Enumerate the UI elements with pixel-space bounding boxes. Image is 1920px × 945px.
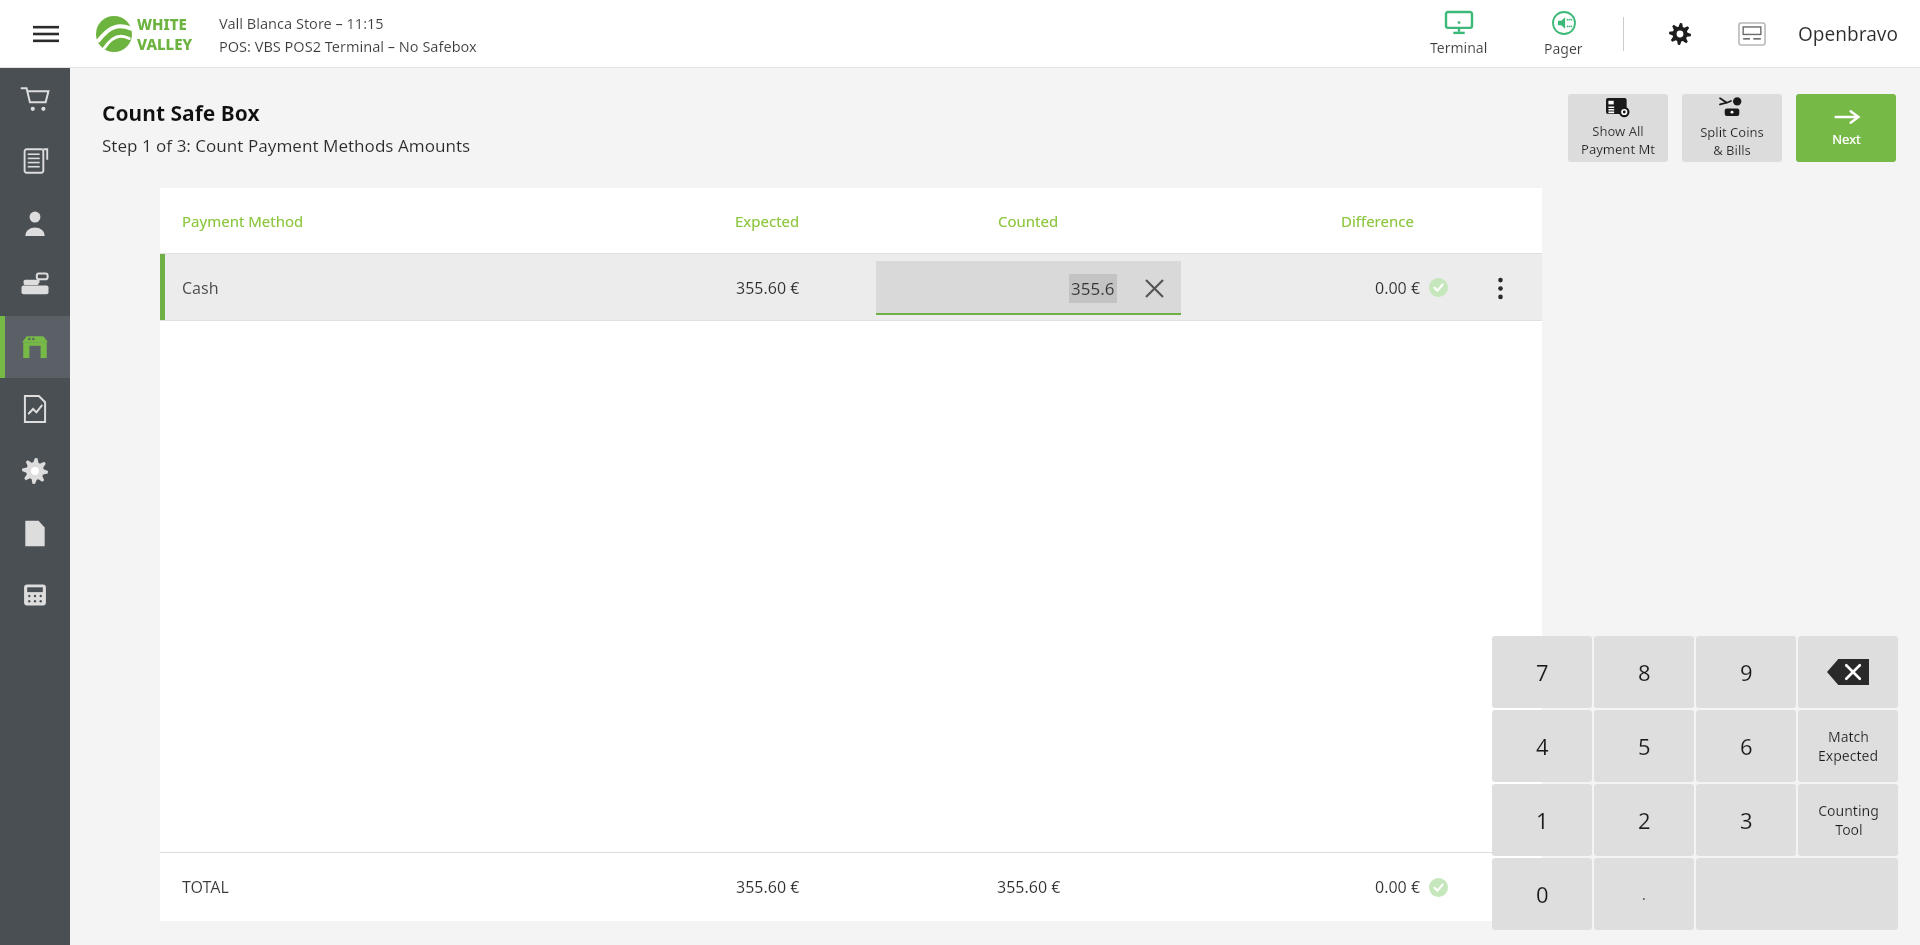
button[interactable]: 2 bbox=[1594, 784, 1694, 856]
button[interactable]: Register bbox=[0, 254, 70, 316]
staticText: Expected bbox=[735, 211, 800, 231]
staticText: Vall Blanca Store – 11:15 bbox=[219, 13, 384, 33]
button[interactable]: Pager bbox=[1538, 11, 1589, 58]
button[interactable]: 7 bbox=[1492, 636, 1592, 708]
button[interactable]: 9 bbox=[1696, 636, 1796, 708]
button[interactable]: 0 bbox=[1492, 858, 1592, 930]
button[interactable]: Split Coins bbox=[1682, 94, 1782, 162]
button[interactable]: Store bbox=[0, 316, 70, 378]
button[interactable]: Cash bbox=[160, 254, 1542, 321]
staticText: Difference bbox=[1341, 211, 1414, 231]
button[interactable]: Receipts bbox=[0, 130, 70, 192]
staticText: 355.60 € bbox=[736, 876, 800, 898]
staticText: Step 1 of 3: Count Payment Methods Amoun… bbox=[102, 134, 471, 157]
staticText: 0 bbox=[1536, 879, 1549, 909]
button[interactable]: Settings bbox=[1658, 12, 1702, 56]
button[interactable]: 1 bbox=[1492, 784, 1592, 856]
button[interactable]: Calculator bbox=[0, 564, 70, 626]
staticText: 0.00 € bbox=[1375, 876, 1421, 898]
staticText: 3 bbox=[1740, 805, 1753, 835]
staticText: 355.6 bbox=[1071, 277, 1115, 300]
button[interactable]: 8 bbox=[1594, 636, 1694, 708]
button[interactable]: 3 bbox=[1696, 784, 1796, 856]
button[interactable]: Settings bbox=[0, 440, 70, 502]
button[interactable]: Terminal bbox=[1424, 12, 1494, 57]
button[interactable]: Counting bbox=[1798, 784, 1898, 856]
staticText: Next bbox=[1832, 130, 1861, 148]
staticText: & Bills bbox=[1713, 141, 1751, 159]
button[interactable]: Document bbox=[0, 502, 70, 564]
button[interactable]: Menu bbox=[18, 6, 74, 62]
staticText: Match bbox=[1828, 727, 1869, 746]
staticText: VALLEY bbox=[137, 34, 193, 54]
button[interactable]: Report bbox=[0, 378, 70, 440]
staticText: 5 bbox=[1638, 731, 1651, 761]
button[interactable]: Backspace bbox=[1798, 636, 1898, 708]
staticText: Counting bbox=[1818, 801, 1879, 820]
staticText: Counted bbox=[998, 211, 1059, 231]
staticText: 9 bbox=[1740, 657, 1753, 687]
staticText: 0.00 € bbox=[1375, 277, 1421, 299]
staticText: Show All bbox=[1592, 122, 1644, 140]
staticText: 7 bbox=[1536, 657, 1549, 687]
staticText: Openbravo bbox=[1798, 21, 1898, 47]
staticText: TOTAL bbox=[182, 876, 229, 898]
staticText: Payment Method bbox=[182, 211, 304, 231]
staticText: 1 bbox=[1536, 805, 1549, 835]
button[interactable]: Next bbox=[1796, 94, 1896, 162]
staticText: Payment Mt bbox=[1581, 140, 1655, 158]
staticText: Split Coins bbox=[1700, 123, 1764, 141]
button[interactable]: SCO bbox=[1730, 12, 1774, 56]
staticText: 355.60 € bbox=[997, 876, 1061, 898]
button[interactable]: Customer bbox=[0, 192, 70, 254]
button[interactable]: 6 bbox=[1696, 710, 1796, 782]
staticText: 2 bbox=[1638, 805, 1651, 835]
staticText: Pager bbox=[1544, 39, 1583, 58]
staticText: POS: VBS POS2 Terminal – No Safebox bbox=[219, 36, 477, 56]
button[interactable]: 5 bbox=[1594, 710, 1694, 782]
staticText: Terminal bbox=[1430, 38, 1488, 57]
staticText: 8 bbox=[1638, 657, 1651, 687]
button[interactable]: More options bbox=[1482, 270, 1518, 306]
staticText: Cash bbox=[182, 277, 219, 299]
staticText: 4 bbox=[1536, 731, 1549, 761]
button[interactable]: 355.6 bbox=[876, 261, 1181, 315]
staticText: . bbox=[1642, 885, 1646, 904]
staticText: Expected bbox=[1818, 746, 1878, 765]
staticText: 355.60 € bbox=[736, 277, 800, 299]
button[interactable]: Cart bbox=[0, 68, 70, 130]
button[interactable]: Clear bbox=[1141, 275, 1167, 301]
staticText: 6 bbox=[1740, 731, 1753, 761]
staticText: Tool bbox=[1835, 820, 1863, 839]
button[interactable]: Match bbox=[1798, 710, 1898, 782]
button[interactable]: 4 bbox=[1492, 710, 1592, 782]
staticText: Count Safe Box bbox=[102, 99, 260, 128]
staticText: WHITE bbox=[137, 14, 187, 34]
button[interactable]: Show All bbox=[1568, 94, 1668, 162]
